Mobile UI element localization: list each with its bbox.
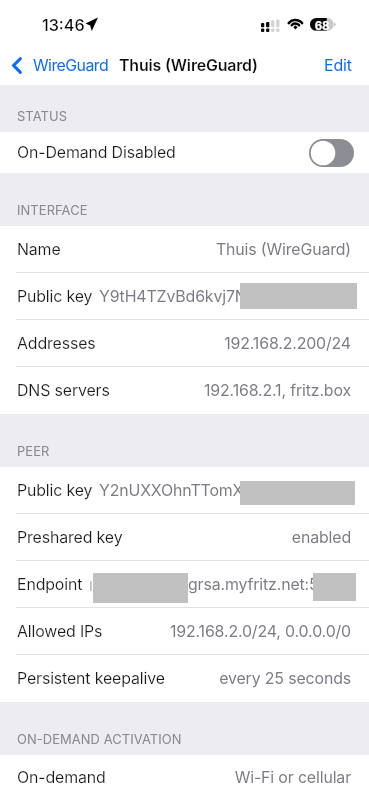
button[interactable]: DNS servers [0, 367, 369, 414]
staticText: Addresses [17, 334, 96, 353]
staticText: STATUS [17, 109, 68, 125]
staticText: 68 [310, 19, 334, 33]
staticText: DNS servers [17, 381, 110, 400]
staticText: Public key [17, 481, 93, 500]
staticText: enabled [291, 528, 351, 547]
button[interactable]: Allowed IPs [0, 608, 369, 655]
staticText: every 25 seconds [219, 669, 351, 688]
button[interactable]: Name [0, 226, 369, 273]
button[interactable]: On-Demand toggle [309, 139, 354, 167]
staticText: 192.168.2.1, fritz.box [204, 381, 351, 400]
button[interactable]: Public key [0, 467, 369, 514]
staticText: INTERFACE [17, 203, 88, 219]
staticText: grsa.myfritz.net:5 [188, 575, 319, 594]
staticText: Thuis (WireGuard) [119, 56, 258, 75]
button[interactable]: On-Demand Disabled [0, 132, 369, 173]
button[interactable]: Edit [310, 56, 369, 75]
staticText: ON-DEMAND ACTIVATION [17, 732, 182, 748]
button[interactable]: Endpoint [0, 561, 369, 608]
button[interactable]: Persistent keepalive [0, 655, 369, 702]
staticText: Preshared key [17, 528, 123, 547]
staticText: Name [17, 240, 61, 259]
staticText: Persistent keepalive [17, 669, 165, 688]
staticText: 13:46 [42, 15, 85, 35]
button[interactable]: On-demand [0, 755, 369, 800]
staticText: Allowed IPs [17, 622, 103, 641]
button[interactable]: WireGuard [0, 56, 117, 75]
button[interactable]: Addresses [0, 320, 369, 367]
staticText: Y2nUXXOhnTTomX [99, 481, 244, 500]
button[interactable]: Preshared key [0, 514, 369, 561]
staticText: Y9tH4TZvBd6kvj7N [99, 287, 247, 306]
staticText: WireGuard [33, 56, 109, 75]
staticText: Thuis (WireGuard) [215, 240, 351, 259]
button[interactable]: Public key [0, 273, 369, 320]
staticText: 192.168.2.200/24 [224, 334, 351, 353]
staticText: Public key [17, 287, 93, 306]
staticText: 192.168.2.0/24, 0.0.0.0/0 [169, 622, 351, 641]
staticText: Endpoint [17, 575, 83, 594]
staticText: On-Demand Disabled [17, 143, 176, 162]
staticText: On-demand [17, 768, 106, 787]
staticText: PEER [17, 444, 50, 460]
staticText: Wi-Fi or cellular [234, 768, 351, 787]
